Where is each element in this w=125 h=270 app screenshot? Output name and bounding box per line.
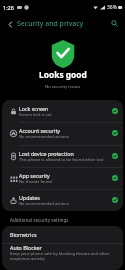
staticText: Biometrics	[10, 231, 37, 238]
button[interactable]: Biometrics	[2, 226, 123, 243]
staticText: Security and privacy	[17, 19, 84, 28]
button[interactable]: Search	[108, 17, 121, 30]
staticText: Lost device protection	[19, 150, 74, 157]
button[interactable]: Lock screen	[2, 100, 123, 122]
button[interactable]: App security	[2, 167, 123, 189]
staticText: No threats found	[19, 179, 52, 185]
staticText: Keep your phone safe by blocking threats…	[10, 251, 115, 261]
staticText: Updates	[19, 194, 40, 201]
button[interactable]: Back	[4, 18, 17, 31]
staticText: No recommended actions	[19, 201, 69, 207]
button[interactable]: Auto Blocker	[2, 244, 123, 261]
staticText: 1:26	[3, 4, 14, 11]
staticText: Additional security settings	[10, 217, 69, 223]
staticText: Looks good	[39, 69, 87, 80]
staticText: 36%	[107, 4, 117, 11]
staticText: Screen lock is set	[19, 112, 52, 118]
staticText: Auto Blocker	[10, 244, 42, 251]
staticText: Account security	[19, 127, 61, 134]
staticText: Lock screen	[19, 105, 49, 112]
staticText: This phone is allowed to be found when l…	[19, 157, 104, 163]
button[interactable]: Updates	[2, 189, 123, 211]
button[interactable]: Lost device protection	[2, 145, 123, 167]
button[interactable]: Account security	[2, 122, 123, 144]
staticText: App security	[19, 172, 50, 179]
staticText: No security issues	[45, 84, 81, 90]
staticText: No recommended actions	[19, 134, 69, 140]
